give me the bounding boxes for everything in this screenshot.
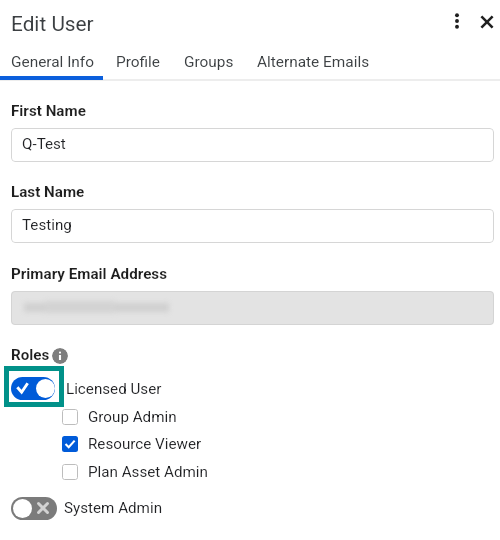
button[interactable]: Q-Test <box>11 128 494 162</box>
staticText: Plan Asset Admin <box>88 463 208 479</box>
staticText: Edit User <box>11 12 94 36</box>
button[interactable]: Profile <box>105 46 171 78</box>
button[interactable]: Alternate Emails <box>246 46 381 78</box>
staticText: Licensed User <box>66 380 162 398</box>
staticText: General Info <box>11 53 94 71</box>
button[interactable]: Roles information <box>52 348 68 364</box>
staticText: Profile <box>116 53 160 71</box>
button[interactable]: Group Admin <box>62 409 262 425</box>
button[interactable]: General Info <box>0 46 105 78</box>
button[interactable]: Resource Viewer <box>62 436 262 452</box>
button[interactable]: Groups <box>173 46 245 78</box>
button[interactable]: More options <box>441 5 473 37</box>
staticText: Groups <box>184 53 234 71</box>
staticText: Last Name <box>11 183 85 201</box>
staticText: System Admin <box>64 499 163 517</box>
staticText: Roles <box>11 346 50 364</box>
staticText: Resource Viewer <box>88 435 202 451</box>
staticText: Q-Test <box>22 135 66 153</box>
staticText: Testing <box>22 216 72 234</box>
button[interactable]: Licensed User toggle <box>4 366 64 407</box>
button[interactable]: Primary email address (disabled) <box>11 291 494 325</box>
button[interactable]: Testing <box>11 209 494 243</box>
button[interactable]: System Admin toggle <box>11 497 57 520</box>
button[interactable]: Close <box>471 6 500 38</box>
staticText: Primary Email Address <box>11 265 167 283</box>
staticText: Alternate Emails <box>257 53 370 71</box>
button[interactable]: Plan Asset Admin <box>62 464 262 480</box>
staticText: Group Admin <box>88 408 177 424</box>
staticText: First Name <box>11 102 86 120</box>
